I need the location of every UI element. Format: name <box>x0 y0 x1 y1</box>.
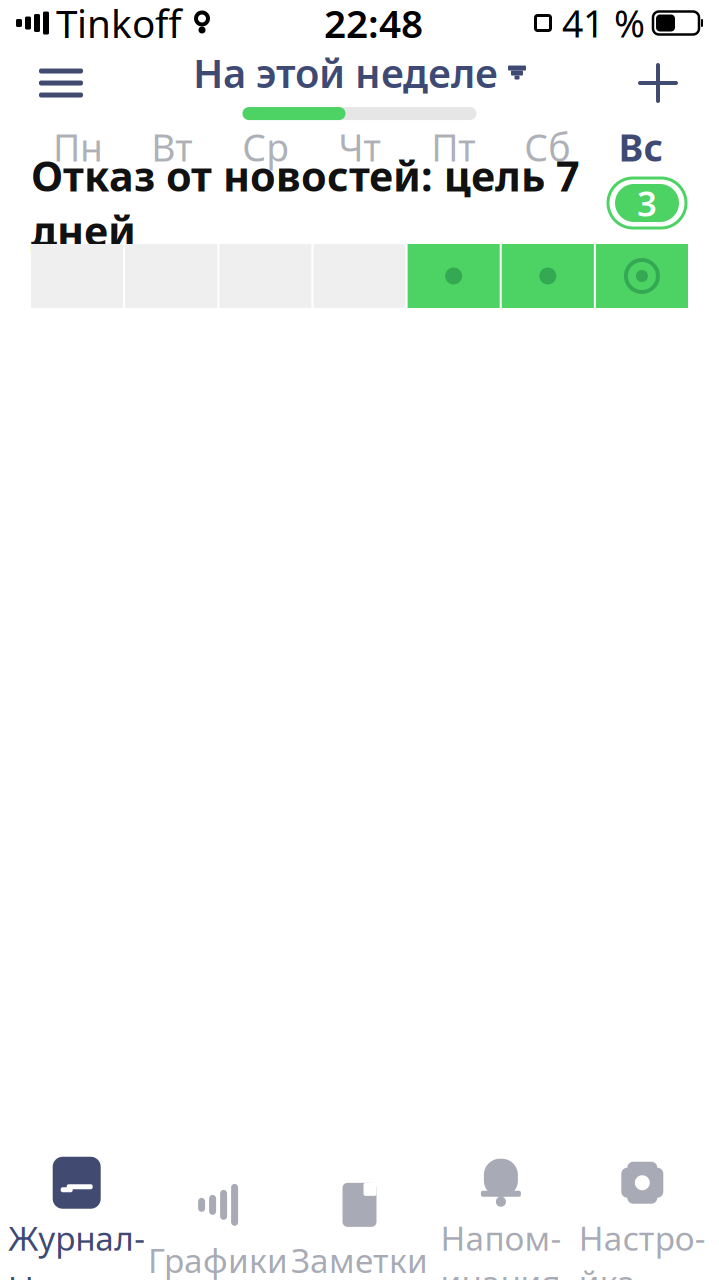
button[interactable] <box>502 244 594 308</box>
button[interactable]: 3 <box>606 176 688 230</box>
staticText: Напоминания <box>440 1216 561 1280</box>
button[interactable]: Настройка <box>572 1182 713 1278</box>
staticText: Настройка <box>579 1216 706 1280</box>
staticText: 41 % <box>562 0 645 48</box>
staticText: Пн <box>53 122 103 172</box>
staticText: Вс <box>619 122 664 172</box>
button[interactable] <box>596 244 688 308</box>
staticText: 3 <box>637 180 657 226</box>
button[interactable]: Пт <box>406 122 500 172</box>
staticText: Графики <box>148 1238 288 1280</box>
button[interactable]: Сб <box>500 122 594 172</box>
staticText: Вт <box>151 122 192 172</box>
button[interactable]: Журналы <box>6 1182 147 1278</box>
staticText: Сб <box>524 122 570 172</box>
button[interactable]: Add <box>615 52 701 114</box>
staticText: Пт <box>431 122 475 172</box>
staticText: 22:48 <box>324 0 423 49</box>
button[interactable]: Menu <box>18 52 104 114</box>
staticText: Отказ от новостей: цель 7 дней <box>31 148 580 258</box>
button[interactable] <box>408 244 500 308</box>
button[interactable]: Вт <box>125 122 219 172</box>
staticText: Ср <box>242 122 289 172</box>
button[interactable]: Пн <box>31 122 125 172</box>
staticText: На этой неделе <box>193 46 498 99</box>
staticText: Чт <box>338 122 380 172</box>
button[interactable]: Графики <box>147 1182 289 1278</box>
button[interactable]: Вс <box>594 122 688 172</box>
button[interactable]: Чт <box>313 122 406 172</box>
button[interactable]: Заметки <box>289 1182 430 1278</box>
button[interactable]: Ср <box>219 122 313 172</box>
staticText: Заметки <box>291 1238 428 1280</box>
staticText: Журналы <box>8 1216 145 1280</box>
staticText: Tinkoff <box>56 0 182 49</box>
button[interactable]: Напоминания <box>430 1182 572 1278</box>
button[interactable]: На этой неделе <box>183 42 536 124</box>
